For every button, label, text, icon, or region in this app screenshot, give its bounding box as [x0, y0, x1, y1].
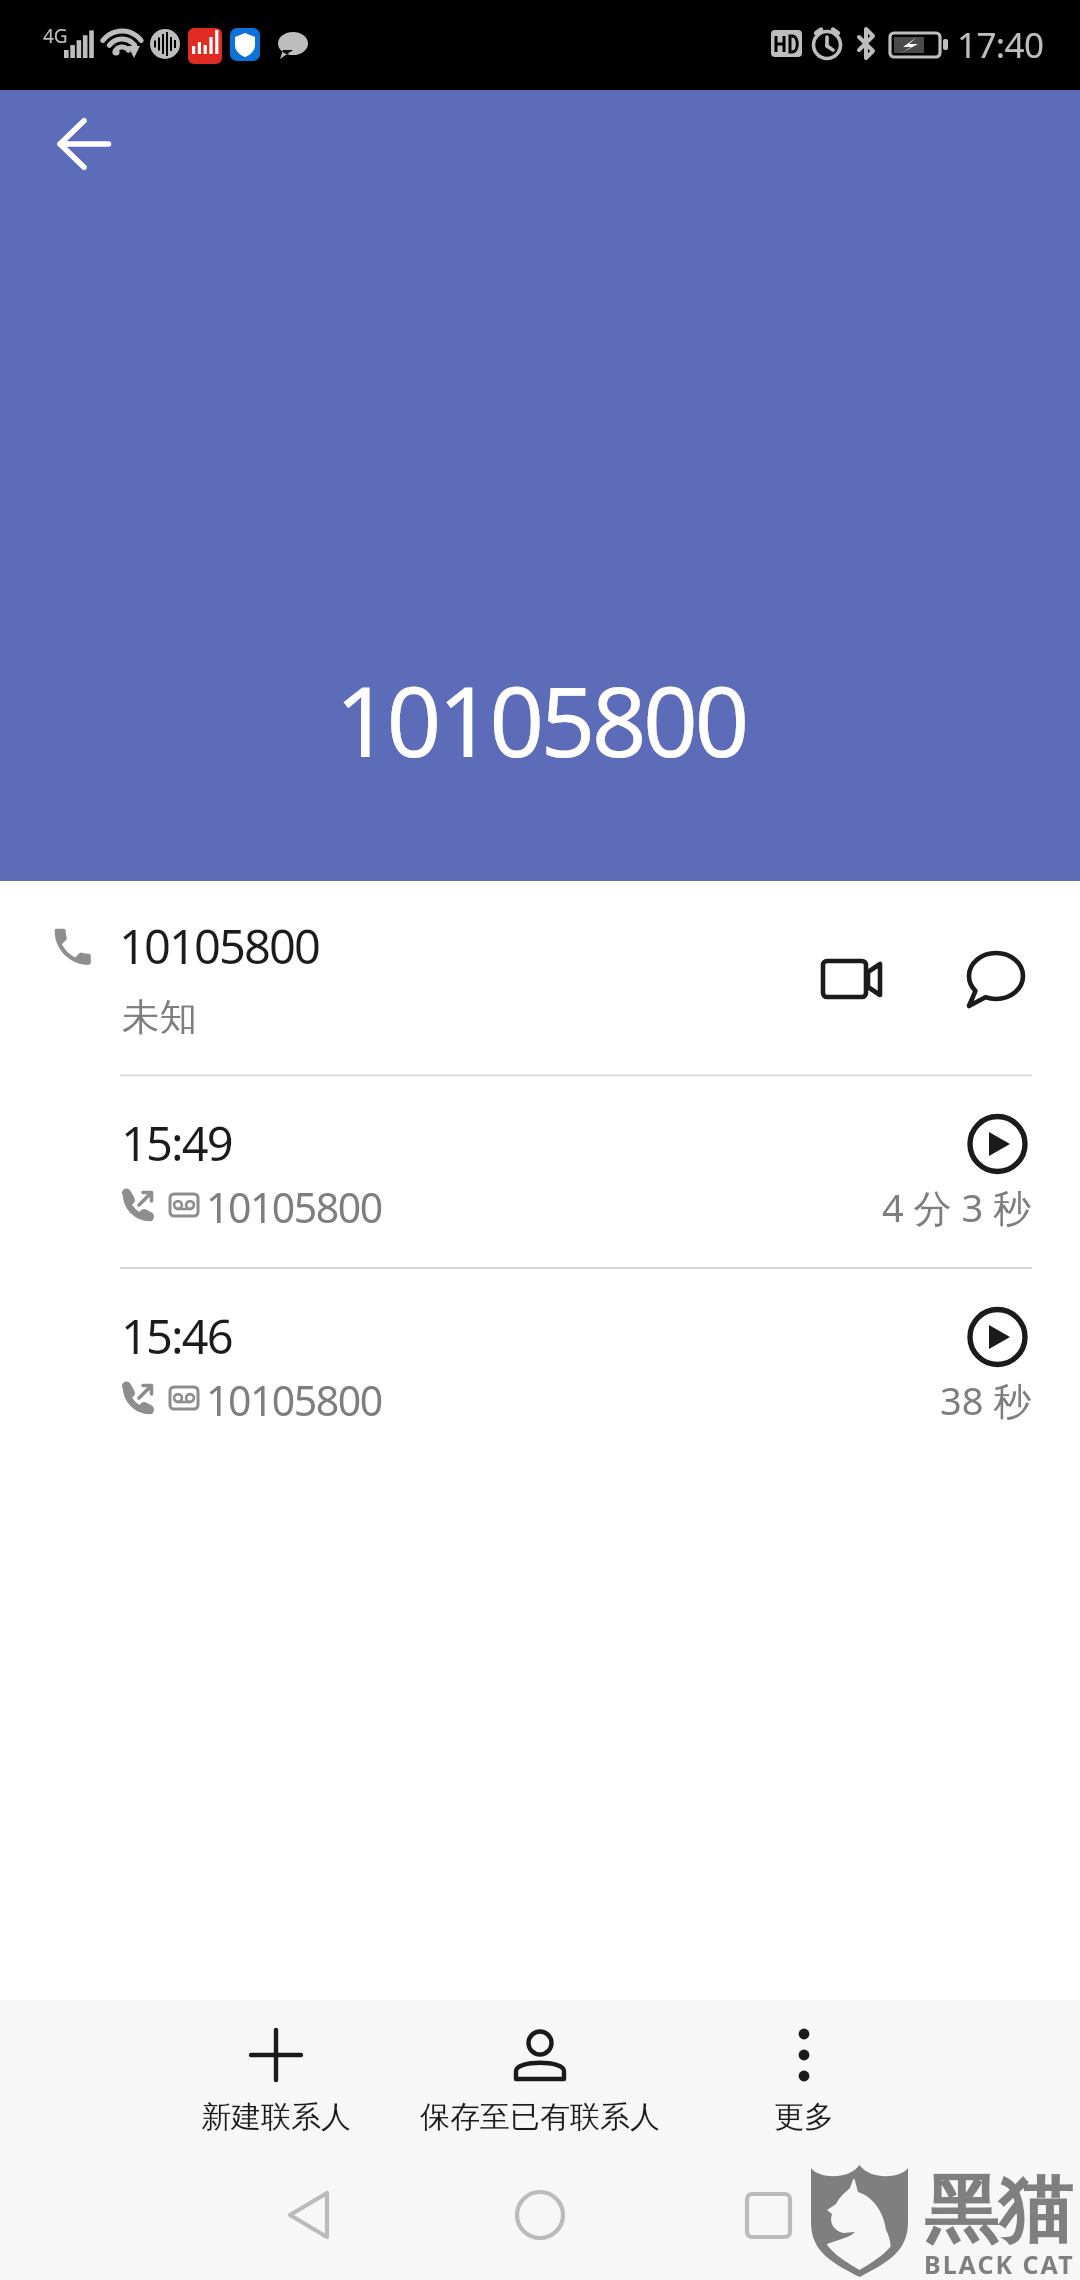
- staticText: 15:49: [121, 1111, 232, 1175]
- staticText: 4 分 3 秒: [882, 1181, 1032, 1233]
- button[interactable]: Recent apps: [664, 2170, 880, 2260]
- staticText: 新建联系人: [201, 2098, 351, 2136]
- staticText: 10105800: [335, 654, 746, 785]
- button[interactable]: Back: [200, 2170, 416, 2260]
- staticText: 未知: [122, 994, 197, 1041]
- button[interactable]: 更多: [672, 2000, 936, 2150]
- staticText: BLACK CAT: [924, 2247, 1075, 2280]
- staticText: 保存至已有联系人: [420, 2098, 660, 2136]
- staticText: 10105800: [206, 1179, 382, 1235]
- button[interactable]: Back: [30, 90, 138, 198]
- staticText: 更多: [774, 2098, 834, 2136]
- staticText: 38 秒: [940, 1374, 1032, 1426]
- staticText: 15:46: [121, 1304, 232, 1368]
- button[interactable]: Send message: [938, 930, 1054, 1026]
- staticText: 黑猫: [924, 2164, 1072, 2257]
- button[interactable]: 15:46: [0, 1268, 1080, 1461]
- staticText: 10105800: [206, 1372, 382, 1428]
- button[interactable]: 新建联系人: [144, 2000, 408, 2150]
- button[interactable]: Play recording: [949, 1289, 1045, 1385]
- button[interactable]: 10105800: [0, 881, 1080, 1075]
- staticText: 10105800: [119, 914, 319, 978]
- staticText: 17:40: [957, 21, 1044, 69]
- button[interactable]: Home: [432, 2170, 648, 2260]
- button[interactable]: Video call: [794, 930, 910, 1026]
- button[interactable]: 15:49: [0, 1075, 1080, 1268]
- staticText: 4G: [43, 23, 68, 49]
- button[interactable]: 保存至已有联系人: [408, 2000, 672, 2150]
- button[interactable]: Play recording: [949, 1096, 1045, 1192]
